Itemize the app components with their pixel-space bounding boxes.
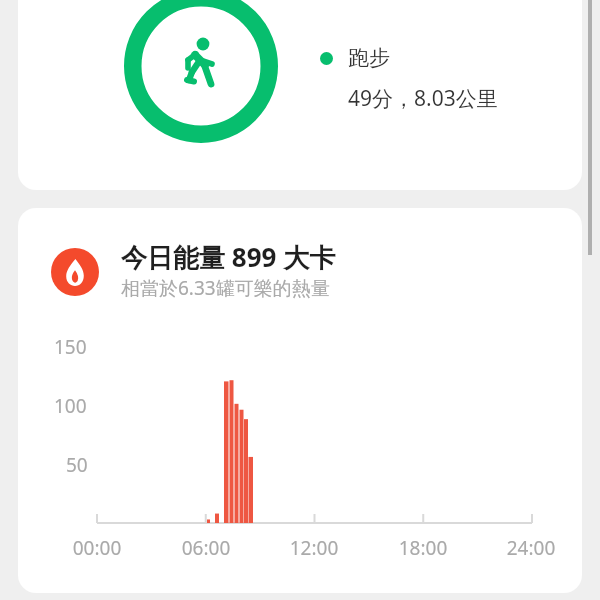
staticText: 今日能量 899 大卡 (121, 239, 336, 275)
staticText: 100 (54, 393, 87, 419)
staticText: 12:00 (289, 535, 339, 561)
staticText: 24:00 (506, 535, 556, 561)
staticText: 150 (54, 334, 87, 360)
other: Running activity ring (124, 0, 278, 143)
button[interactable]: Running activity ring (18, 0, 582, 190)
staticText: 00:00 (72, 535, 122, 561)
staticText: 49分，8.03公里 (348, 84, 498, 113)
other: Calories burned (51, 248, 99, 296)
staticText: 50 (66, 452, 88, 478)
staticText: 06:00 (181, 535, 231, 561)
button[interactable]: Calories burned (18, 208, 582, 593)
staticText: 18:00 (398, 535, 448, 561)
staticText: 相當於6.33罐可樂的熱量 (121, 275, 330, 301)
staticText: 跑步 (348, 45, 390, 71)
